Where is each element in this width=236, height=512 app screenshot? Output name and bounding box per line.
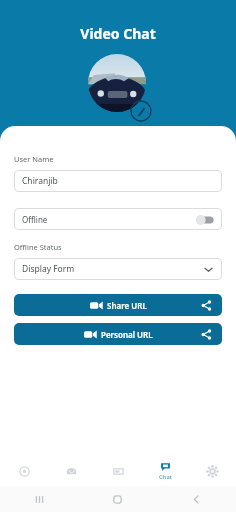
staticText: User Name xyxy=(14,154,54,164)
button[interactable]: Personal URL xyxy=(14,323,222,345)
button[interactable]: Dashboard xyxy=(0,456,48,486)
button[interactable]: Mail xyxy=(48,456,95,486)
staticText: Chiranjib xyxy=(22,175,58,187)
button[interactable] xyxy=(88,54,146,112)
button[interactable]: Chat xyxy=(142,456,189,486)
staticText: Display Form xyxy=(22,263,75,275)
button[interactable]: Offline toggle xyxy=(195,215,214,225)
button[interactable]: Share URL xyxy=(14,294,222,316)
button[interactable]: Edit profile photo xyxy=(130,100,152,122)
button[interactable]: Offline xyxy=(14,208,222,230)
staticText: Share URL xyxy=(107,300,147,311)
staticText: Offline xyxy=(22,214,48,225)
button[interactable]: News xyxy=(95,456,142,486)
button[interactable]: Settings xyxy=(189,456,236,486)
staticText: Personal URL xyxy=(101,329,153,340)
staticText: Video Chat xyxy=(0,24,236,43)
staticText: Chat xyxy=(159,473,173,481)
button[interactable]: Display Form xyxy=(14,258,222,280)
staticText: Offline Status xyxy=(14,242,62,252)
